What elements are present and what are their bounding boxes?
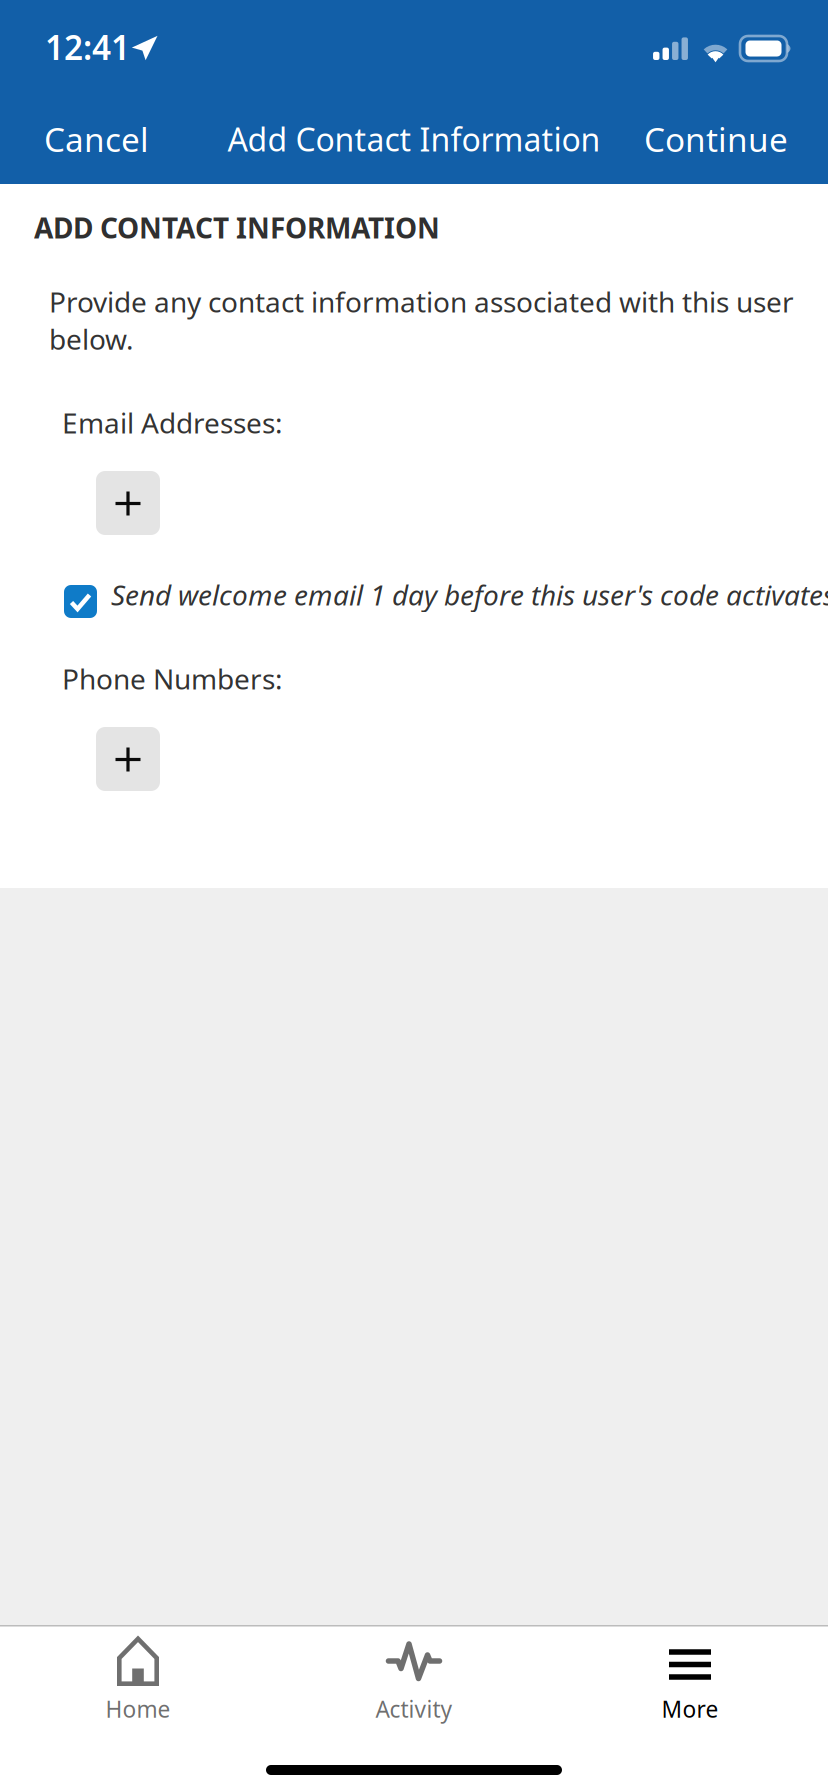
button[interactable]: Send welcome email, enabled bbox=[64, 585, 97, 618]
button[interactable]: More bbox=[552, 1635, 828, 1721]
staticText: Continue bbox=[644, 117, 788, 161]
staticText: 12:41 bbox=[45, 25, 130, 69]
staticText: Phone Numbers: bbox=[62, 660, 283, 697]
button[interactable]: Continue bbox=[614, 94, 828, 184]
button[interactable]: Add bbox=[96, 727, 160, 791]
staticText: Home bbox=[105, 1694, 170, 1724]
button[interactable]: Activity bbox=[276, 1635, 552, 1721]
staticText: Email Addresses: bbox=[62, 404, 283, 441]
staticText: Send welcome email 1 day before this use… bbox=[111, 576, 828, 613]
staticText: Cancel bbox=[44, 117, 149, 161]
staticText: Activity bbox=[375, 1694, 452, 1724]
button[interactable]: Home bbox=[0, 1635, 276, 1721]
staticText: Provide any contact information associat… bbox=[49, 283, 794, 357]
staticText: More bbox=[661, 1694, 718, 1724]
staticText: Add Contact Information bbox=[227, 118, 600, 160]
button[interactable]: Add bbox=[96, 471, 160, 535]
button[interactable]: Cancel bbox=[0, 94, 179, 184]
staticText: ADD CONTACT INFORMATION bbox=[34, 209, 440, 246]
